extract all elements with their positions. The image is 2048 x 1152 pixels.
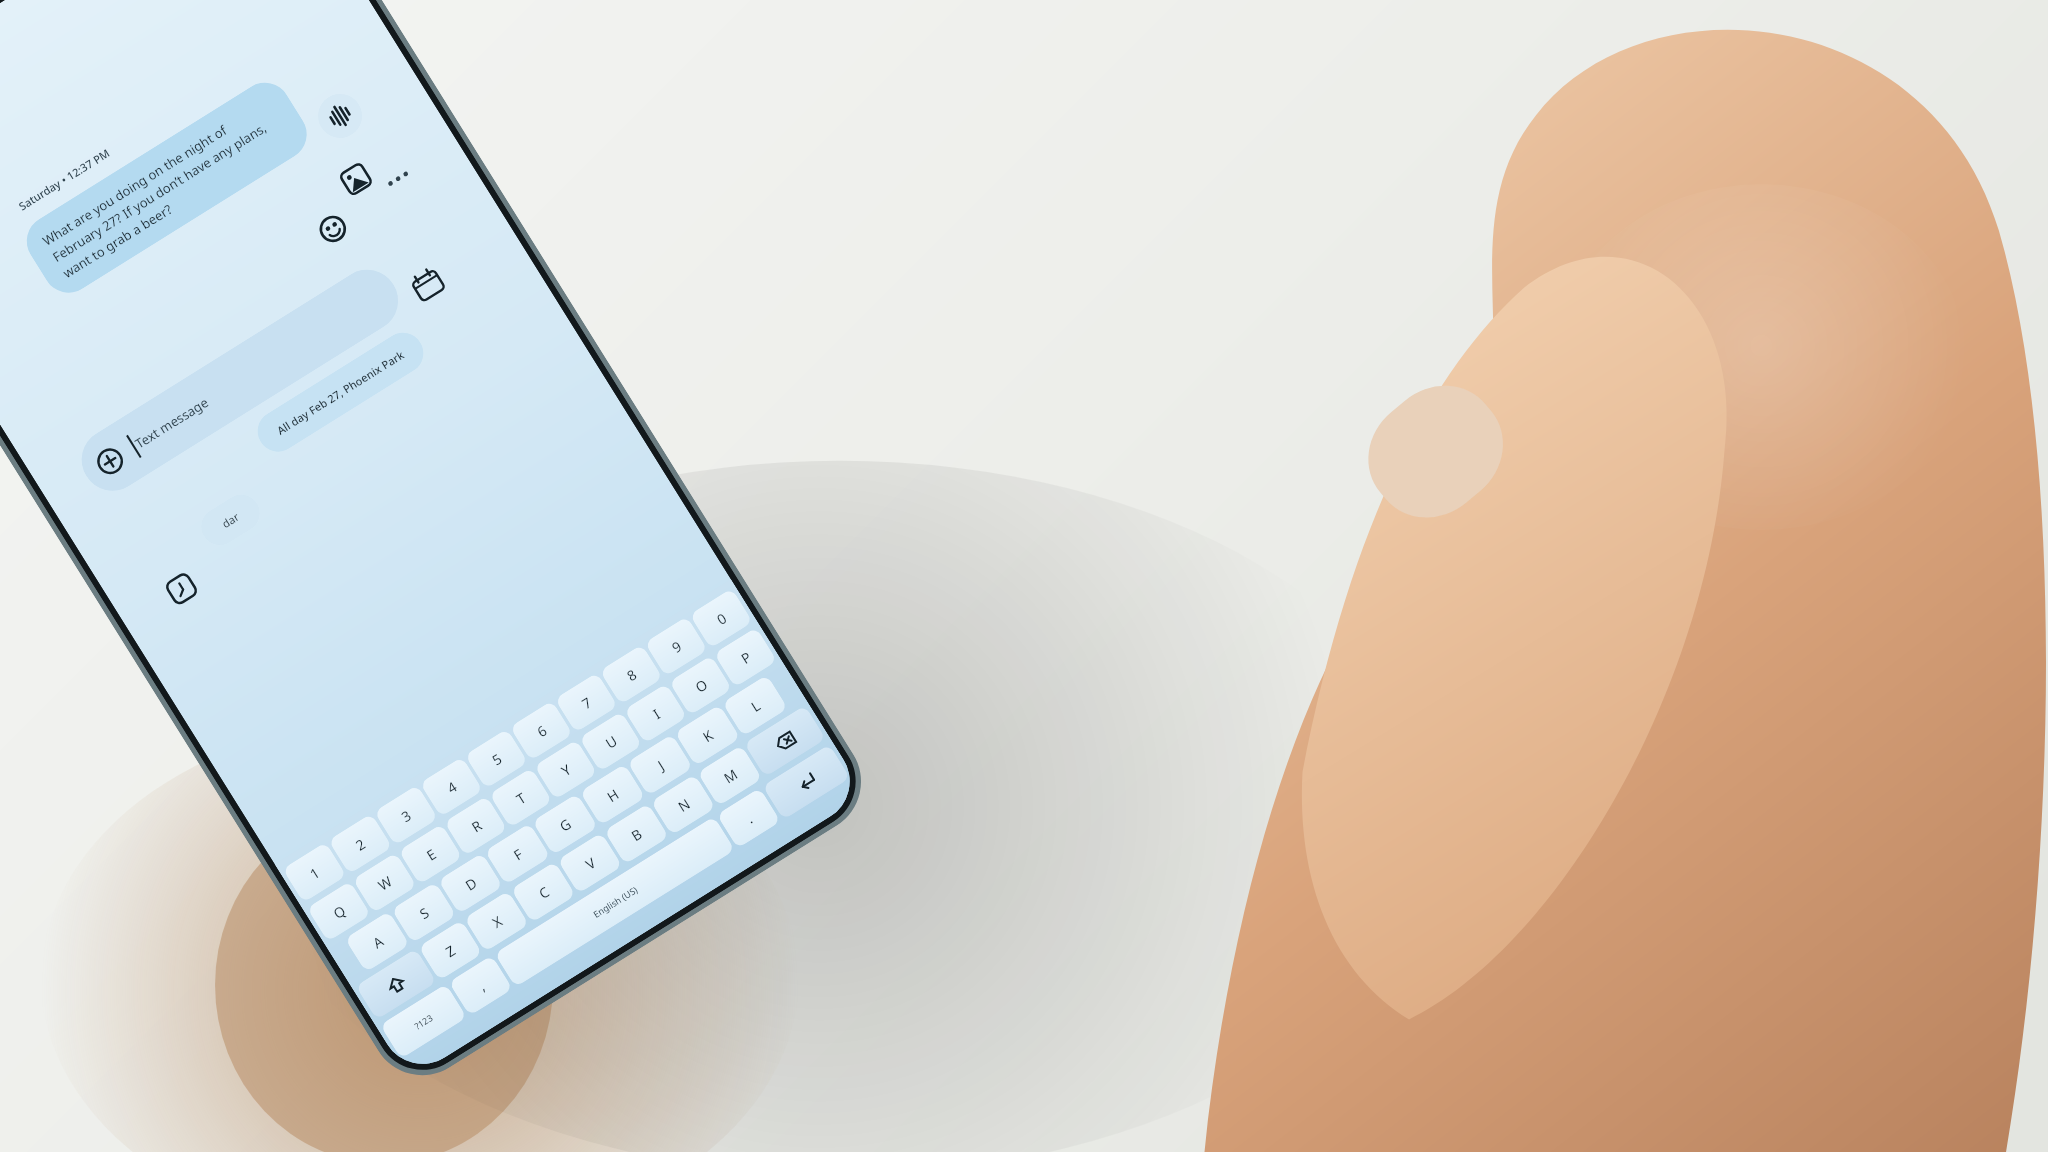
staticText: E	[423, 844, 440, 865]
button[interactable]: .	[716, 788, 781, 848]
button[interactable]: 4	[420, 757, 483, 817]
button[interactable]: B	[604, 803, 669, 865]
button[interactable]: Enter	[762, 744, 850, 820]
staticText: ?123	[412, 1011, 435, 1032]
staticText: Saturday • 12:37 PM	[16, 145, 113, 213]
button[interactable]: A	[345, 911, 410, 972]
staticText: 1	[306, 862, 324, 883]
button[interactable]: ,	[448, 955, 513, 1016]
button[interactable]: 7	[554, 672, 618, 733]
staticText: Q	[329, 901, 349, 923]
button[interactable]: R	[444, 796, 508, 856]
staticText: Z	[442, 940, 459, 961]
staticText: O	[692, 675, 711, 696]
button[interactable]: 2	[328, 813, 392, 874]
button[interactable]: Voice message	[310, 86, 370, 146]
button[interactable]: J	[627, 734, 693, 796]
button[interactable]: L	[722, 675, 788, 737]
button[interactable]: Text message	[70, 258, 410, 502]
staticText: dar	[219, 509, 242, 531]
button[interactable]: Emoji	[305, 201, 360, 256]
staticText: S	[416, 903, 433, 923]
button[interactable]: F	[485, 823, 551, 885]
staticText: W	[374, 871, 396, 895]
staticText: 7	[578, 692, 596, 713]
staticText: Text message	[132, 393, 211, 452]
button[interactable]: C	[511, 861, 576, 923]
staticText: H	[603, 784, 623, 806]
staticText: English (US)	[591, 883, 640, 920]
staticText: 5	[488, 748, 506, 769]
button[interactable]: 1	[282, 842, 347, 903]
staticText: C	[535, 882, 553, 903]
button[interactable]: Gallery	[328, 152, 383, 207]
button[interactable]: 9	[644, 616, 708, 677]
staticText: M	[720, 764, 741, 787]
staticText: N	[674, 794, 694, 816]
button[interactable]: T	[489, 767, 553, 828]
button[interactable]: 3	[374, 785, 438, 846]
staticText: G	[556, 814, 575, 836]
staticText: 0	[713, 608, 731, 629]
staticText: P	[737, 647, 755, 668]
button[interactable]: H	[579, 764, 646, 826]
staticText: 8	[623, 664, 641, 685]
button[interactable]: Q	[307, 881, 371, 942]
button[interactable]: P	[714, 627, 777, 687]
staticText: All day Feb 27, Phoenix Park	[274, 347, 407, 438]
staticText: F	[510, 844, 527, 864]
staticText: B	[628, 824, 646, 845]
staticText: ,	[475, 977, 488, 995]
button[interactable]: 0	[689, 588, 753, 648]
staticText: I	[649, 704, 663, 723]
staticText: Y	[558, 760, 574, 780]
button[interactable]: Z	[418, 920, 483, 981]
button[interactable]: E	[398, 824, 463, 885]
button[interactable]: dar	[194, 488, 267, 552]
button[interactable]: U	[579, 711, 642, 772]
staticText: X	[488, 911, 506, 932]
staticText: 2	[352, 834, 369, 855]
button[interactable]: Schedule send	[158, 565, 205, 612]
staticText: J	[654, 756, 668, 774]
button[interactable]: English (US)	[494, 816, 735, 987]
button[interactable]: N	[651, 774, 716, 835]
staticText: D	[462, 873, 481, 894]
button[interactable]: S	[391, 882, 457, 943]
button[interactable]: V	[557, 832, 623, 894]
staticText: V	[582, 853, 599, 874]
staticText: U	[602, 731, 621, 753]
staticText: A	[369, 931, 387, 952]
button[interactable]: G	[532, 793, 598, 855]
staticText: 4	[443, 776, 461, 797]
button[interactable]: W	[352, 852, 417, 913]
staticText: T	[513, 788, 530, 808]
staticText: R	[468, 816, 485, 836]
button[interactable]: Backspace	[744, 705, 826, 777]
staticText: K	[699, 725, 717, 746]
button[interactable]: Shift	[355, 948, 437, 1020]
staticText: .	[743, 809, 756, 827]
button[interactable]: K	[674, 704, 741, 766]
staticText: 6	[533, 720, 551, 741]
staticText: What are you doing on the night of Febru…	[39, 93, 294, 282]
button[interactable]: What are you doing on the night of Febru…	[17, 73, 316, 302]
button[interactable]: 6	[510, 700, 573, 761]
button[interactable]: M	[697, 745, 762, 806]
staticText: L	[747, 696, 764, 716]
button[interactable]: I	[624, 683, 687, 744]
button[interactable]: All day Feb 27, Phoenix Park	[250, 325, 431, 459]
button[interactable]: 5	[465, 728, 528, 789]
staticText: 3	[397, 805, 415, 826]
button[interactable]: X	[464, 891, 529, 952]
staticText: 9	[668, 636, 686, 657]
button[interactable]: ?123	[380, 984, 467, 1059]
button[interactable]: D	[438, 853, 503, 914]
button[interactable]: O	[669, 655, 732, 716]
button[interactable]: More options	[376, 157, 420, 201]
button[interactable]: Y	[534, 739, 598, 800]
button[interactable]: 8	[599, 644, 663, 705]
